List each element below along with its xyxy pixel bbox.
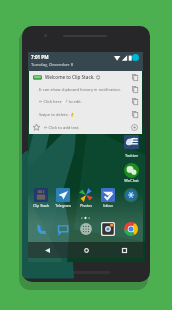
button[interactable]: Telegram (52, 188, 74, 208)
button[interactable]: Back (28, 242, 67, 258)
button[interactable]: WeChat (124, 163, 139, 178)
staticText: Twitter (120, 153, 143, 158)
button[interactable]: App (124, 222, 138, 236)
button[interactable]: Copy (132, 74, 138, 81)
button[interactable]: Clip Stack (30, 188, 52, 208)
button[interactable]: Copy (132, 86, 138, 93)
button[interactable]: ✏ Click here 📝 to edit. (29, 95, 142, 108)
button[interactable]: Copy (132, 111, 138, 118)
staticText: ✏ Click here 📝 to edit. (39, 99, 82, 104)
button[interactable]: App (34, 222, 48, 236)
button[interactable]: Apps (79, 222, 93, 236)
staticText: 7:01 PM (31, 54, 49, 60)
button[interactable]: Inbox (97, 188, 119, 208)
staticText: Tuesday, December 8 (31, 62, 74, 68)
staticText: ✏ Click to add text. (44, 125, 80, 130)
staticText: Swipe to delete. 👌 (39, 112, 75, 117)
button[interactable]: Welcome to Clip Stack. 😊 (29, 71, 142, 83)
button[interactable]: Profile (132, 54, 139, 61)
button[interactable]: Swipe to delete. 👌 (29, 108, 142, 121)
button[interactable]: Add (131, 124, 138, 131)
staticText: Photos (75, 203, 97, 208)
button[interactable]: App (56, 222, 70, 236)
staticText: Telegram (52, 203, 74, 208)
button[interactable]: Photos (75, 188, 97, 208)
staticText: WeChat (120, 178, 143, 183)
button[interactable]: Home (67, 242, 105, 258)
button[interactable]: It can show clipboard history in notific… (29, 83, 142, 95)
staticText: It can show clipboard history in notific… (39, 87, 122, 92)
staticText: Clip Stack (30, 203, 52, 208)
button[interactable]: ✏ Click to add text. (29, 121, 142, 134)
staticText: Inbox (97, 203, 119, 208)
button[interactable]: App (124, 188, 138, 202)
staticText: Welcome to Clip Stack. 😊 (45, 74, 101, 80)
button[interactable]: Copy (132, 98, 138, 105)
button[interactable]: Recents (105, 242, 143, 258)
button[interactable]: App (101, 222, 115, 236)
button[interactable]: Twitter (124, 135, 139, 149)
